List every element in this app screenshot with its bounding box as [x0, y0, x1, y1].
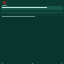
button[interactable]	[1, 6, 63, 10]
button[interactable]: App icon	[3, 1, 6, 4]
button[interactable]	[2, 15, 62, 17]
